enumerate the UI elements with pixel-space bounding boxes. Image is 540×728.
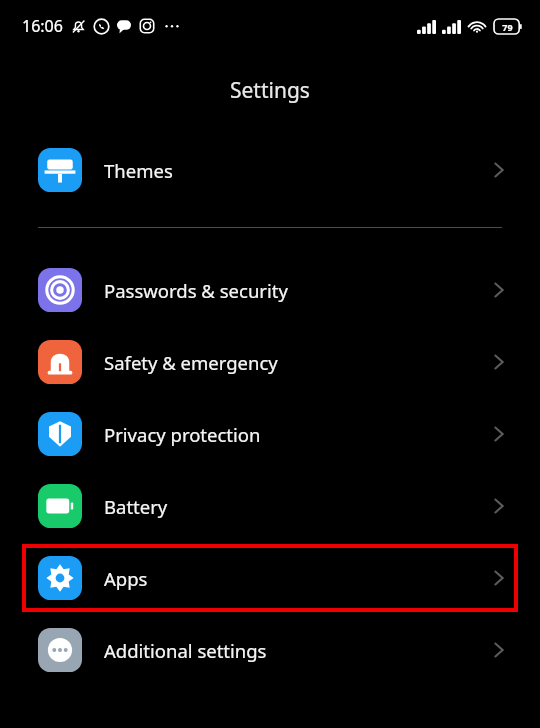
staticText: 79: [502, 21, 513, 33]
button[interactable]: Additional settings: [0, 614, 540, 686]
staticText: Privacy protection: [104, 422, 261, 447]
button[interactable]: Privacy protection: [0, 398, 540, 470]
staticText: Apps: [104, 566, 148, 591]
button[interactable]: Safety & emergency: [0, 326, 540, 398]
staticText: Safety & emergency: [104, 350, 278, 375]
staticText: 16:06: [22, 15, 63, 37]
button[interactable]: Passwords & security: [0, 254, 540, 326]
button[interactable]: Themes: [0, 134, 540, 206]
button[interactable]: Apps: [0, 542, 540, 614]
staticText: Additional settings: [104, 638, 267, 663]
staticText: Themes: [104, 158, 173, 183]
staticText: Passwords & security: [104, 278, 288, 303]
staticText: Settings: [230, 76, 310, 105]
button[interactable]: Battery: [0, 470, 540, 542]
staticText: Battery: [104, 494, 168, 519]
